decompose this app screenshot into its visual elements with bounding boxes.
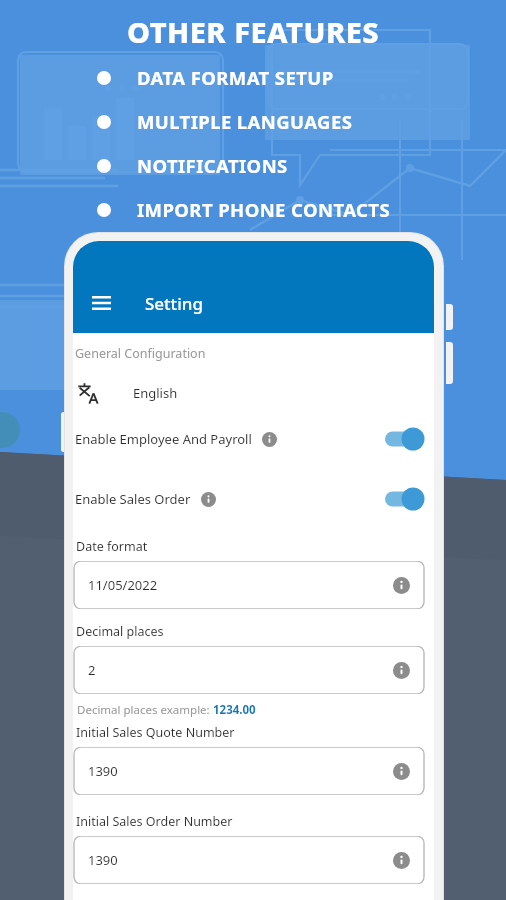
staticText: Initial Sales Order Number bbox=[76, 813, 233, 830]
staticText: MULTIPLE LANGUAGES bbox=[137, 109, 353, 134]
staticText: Decimal places example: bbox=[77, 702, 213, 718]
staticText: Decimal places bbox=[76, 623, 164, 640]
staticText: NOTIFICATIONS bbox=[137, 153, 288, 178]
staticText: English bbox=[133, 384, 178, 402]
button[interactable]: 1390 bbox=[73, 836, 425, 884]
staticText: IMPORT PHONE CONTACTS bbox=[137, 197, 391, 222]
button[interactable]: English bbox=[73, 378, 434, 408]
staticText: 2 bbox=[88, 661, 96, 679]
staticText: Date format bbox=[76, 538, 148, 555]
button[interactable]: 2 bbox=[73, 646, 425, 694]
staticText: Enable Employee And Payroll bbox=[75, 430, 252, 448]
staticText: 11/05/2022 bbox=[88, 576, 158, 594]
staticText: 1234.00 bbox=[213, 702, 256, 718]
staticText: 1390 bbox=[88, 762, 118, 780]
staticText: DATA FORMAT SETUP bbox=[137, 65, 334, 90]
staticText: OTHER FEATURES bbox=[127, 12, 380, 51]
staticText: Enable Sales Order bbox=[75, 490, 191, 508]
button[interactable]: Open navigation menu bbox=[81, 283, 121, 323]
staticText: General Configuration bbox=[75, 345, 206, 362]
staticText: 1390 bbox=[88, 851, 118, 869]
button[interactable]: Enable Employee And Payroll bbox=[73, 428, 434, 450]
button[interactable]: 11/05/2022 bbox=[73, 561, 425, 609]
staticText: Initial Sales Quote Number bbox=[76, 724, 235, 741]
button[interactable]: 1390 bbox=[73, 747, 425, 795]
staticText: Setting bbox=[145, 292, 203, 315]
button[interactable]: Enable Sales Order bbox=[73, 488, 434, 510]
